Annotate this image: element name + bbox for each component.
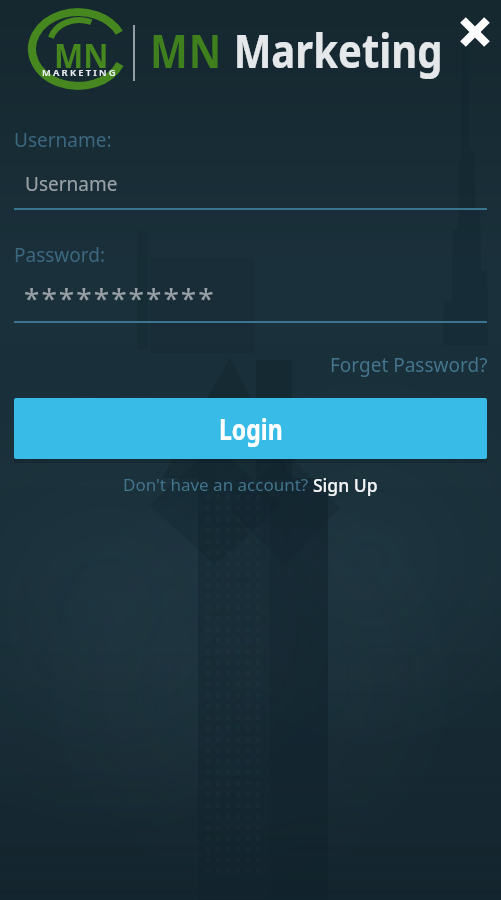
staticText: Don't have an account?: [123, 473, 313, 496]
button[interactable]: Login: [14, 398, 487, 459]
staticText: MN Marketing: [150, 18, 443, 81]
button[interactable]: MN: [28, 6, 128, 92]
button[interactable]: ***********: [14, 273, 487, 323]
staticText: ***********: [24, 279, 216, 317]
staticText: Login: [219, 409, 283, 448]
staticText: Password:: [14, 242, 106, 268]
button[interactable]: Sign Up: [313, 473, 378, 497]
staticText: MARKETING: [42, 66, 118, 79]
staticText: Sign Up: [313, 473, 378, 497]
button[interactable]: Username: [14, 160, 487, 210]
button[interactable]: Forget Password?: [330, 352, 488, 378]
staticText: MN: [54, 31, 109, 78]
staticText: Forget Password?: [330, 352, 488, 378]
staticText: Username: [25, 171, 118, 197]
button[interactable]: [457, 15, 493, 51]
staticText: Username:: [14, 127, 112, 153]
